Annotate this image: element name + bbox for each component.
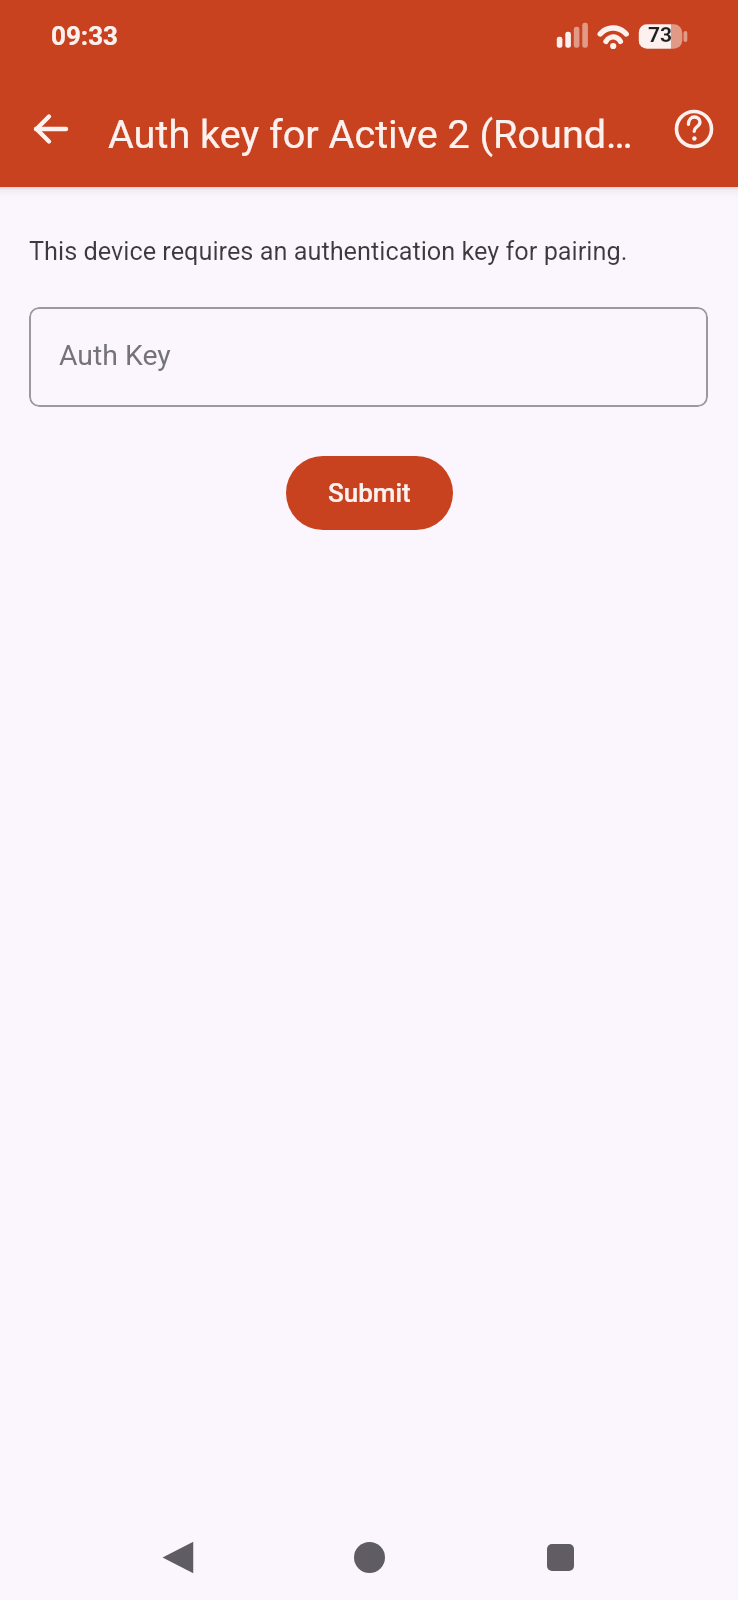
staticText: Submit <box>328 478 411 508</box>
button[interactable]: Navigate up <box>27 105 75 153</box>
button[interactable]: Help <box>670 105 718 153</box>
staticText: Auth key for Active 2 (Round… <box>108 111 633 157</box>
staticText: Auth Key <box>59 339 171 372</box>
button[interactable]: Back <box>135 1514 221 1600</box>
staticText: This device requires an authentication k… <box>29 237 628 267</box>
button[interactable]: Auth Key <box>29 307 708 407</box>
staticText: 73 <box>648 23 673 48</box>
staticText: 09:33 <box>51 21 118 51</box>
button[interactable]: Recent apps <box>517 1514 603 1600</box>
button[interactable]: Home <box>326 1514 412 1600</box>
button[interactable]: Submit <box>286 456 453 530</box>
